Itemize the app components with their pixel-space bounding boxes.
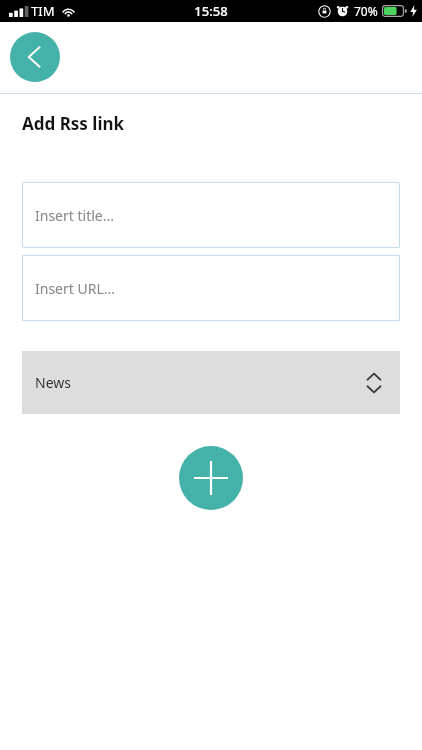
staticText: TIM (31, 2, 55, 20)
staticText: 15:58 (194, 2, 228, 20)
staticText: News (35, 373, 71, 392)
button[interactable]: Back (10, 32, 60, 82)
button[interactable]: News (22, 351, 400, 414)
button[interactable]: Insert URL... (22, 255, 400, 321)
staticText: 70% (354, 3, 378, 19)
button[interactable]: Add (179, 446, 243, 510)
button[interactable]: Insert title... (22, 182, 400, 248)
staticText: Insert title... (35, 206, 114, 225)
staticText: Add Rss link (22, 112, 125, 135)
staticText: Insert URL... (35, 279, 116, 298)
